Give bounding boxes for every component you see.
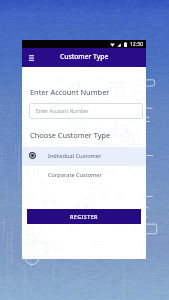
button[interactable]: Individual Customer xyxy=(22,147,146,166)
staticText: Enter Account Number xyxy=(36,108,89,115)
button[interactable]: REGISTER xyxy=(27,209,141,224)
staticText: REGISTER xyxy=(70,213,98,220)
staticText: Corporate Customer xyxy=(48,171,102,179)
button[interactable]: Open navigation menu xyxy=(25,52,37,64)
staticText: 12:30 xyxy=(130,41,143,48)
staticText: Customer Type xyxy=(60,52,109,61)
staticText: Enter Account Number xyxy=(30,87,110,97)
button[interactable]: Enter Account Number xyxy=(29,103,143,119)
staticText: Choose Customer Type xyxy=(30,130,111,140)
button[interactable]: Corporate Customer xyxy=(22,166,146,185)
staticText: Individual Customer xyxy=(48,152,102,160)
